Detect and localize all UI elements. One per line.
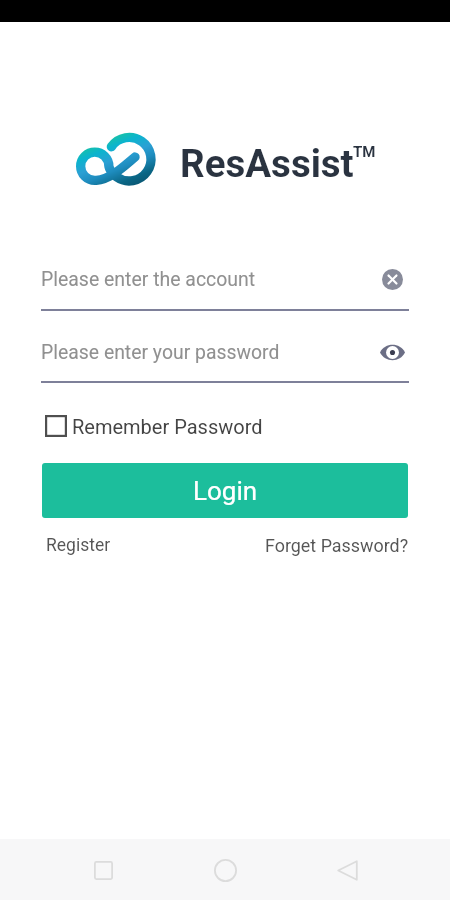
staticText: Remember Password — [72, 415, 263, 438]
button[interactable]: Recent apps — [81, 848, 125, 892]
staticText: TM — [353, 143, 376, 161]
button[interactable]: Clear account — [375, 264, 409, 294]
button[interactable]: Forget Password? — [265, 535, 409, 556]
button[interactable]: Show password — [375, 337, 409, 367]
button[interactable]: Home — [203, 848, 247, 892]
button[interactable]: Remember Password — [45, 411, 263, 441]
staticText: Please enter your password — [41, 341, 375, 364]
staticText: Please enter the account — [41, 268, 375, 291]
button[interactable]: Back — [325, 848, 369, 892]
button[interactable]: Login — [42, 463, 408, 518]
staticText: Login — [193, 476, 258, 506]
button[interactable]: Register — [46, 535, 111, 556]
staticText: ResAssist — [180, 141, 354, 186]
